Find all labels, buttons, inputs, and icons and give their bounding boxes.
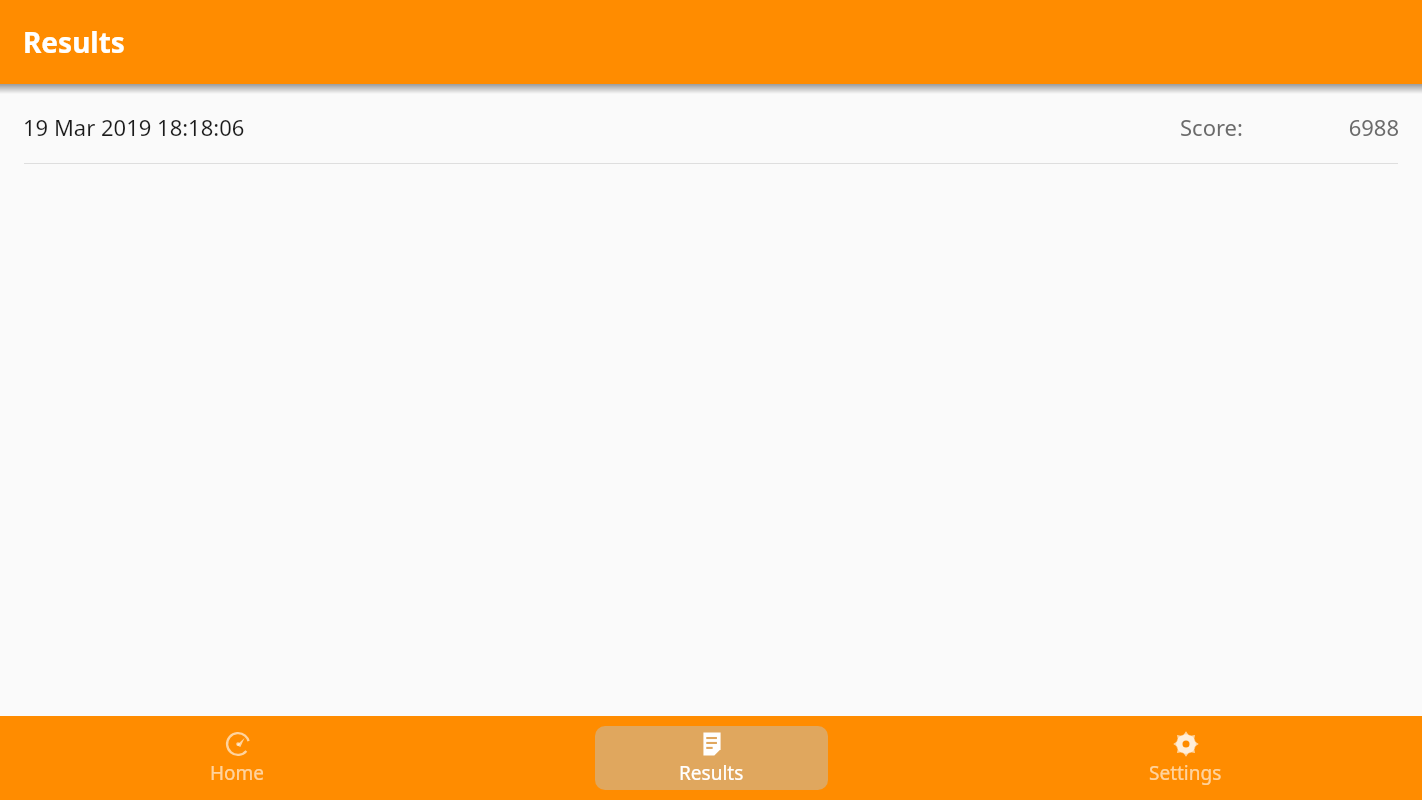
staticText: Home bbox=[210, 760, 265, 786]
staticText: Results bbox=[23, 23, 125, 61]
staticText: 19 Mar 2019 18:18:06 bbox=[23, 112, 245, 142]
button[interactable]: Home bbox=[121, 726, 354, 790]
staticText: Results bbox=[679, 760, 744, 786]
staticText: Settings bbox=[1149, 760, 1222, 786]
button[interactable]: Results bbox=[595, 726, 828, 790]
button[interactable]: 19 Mar 2019 18:18:06 bbox=[0, 112, 1422, 142]
staticText: 6988 bbox=[1348, 112, 1399, 142]
staticText: Score: bbox=[1180, 112, 1243, 142]
button[interactable]: Settings bbox=[1069, 726, 1302, 790]
